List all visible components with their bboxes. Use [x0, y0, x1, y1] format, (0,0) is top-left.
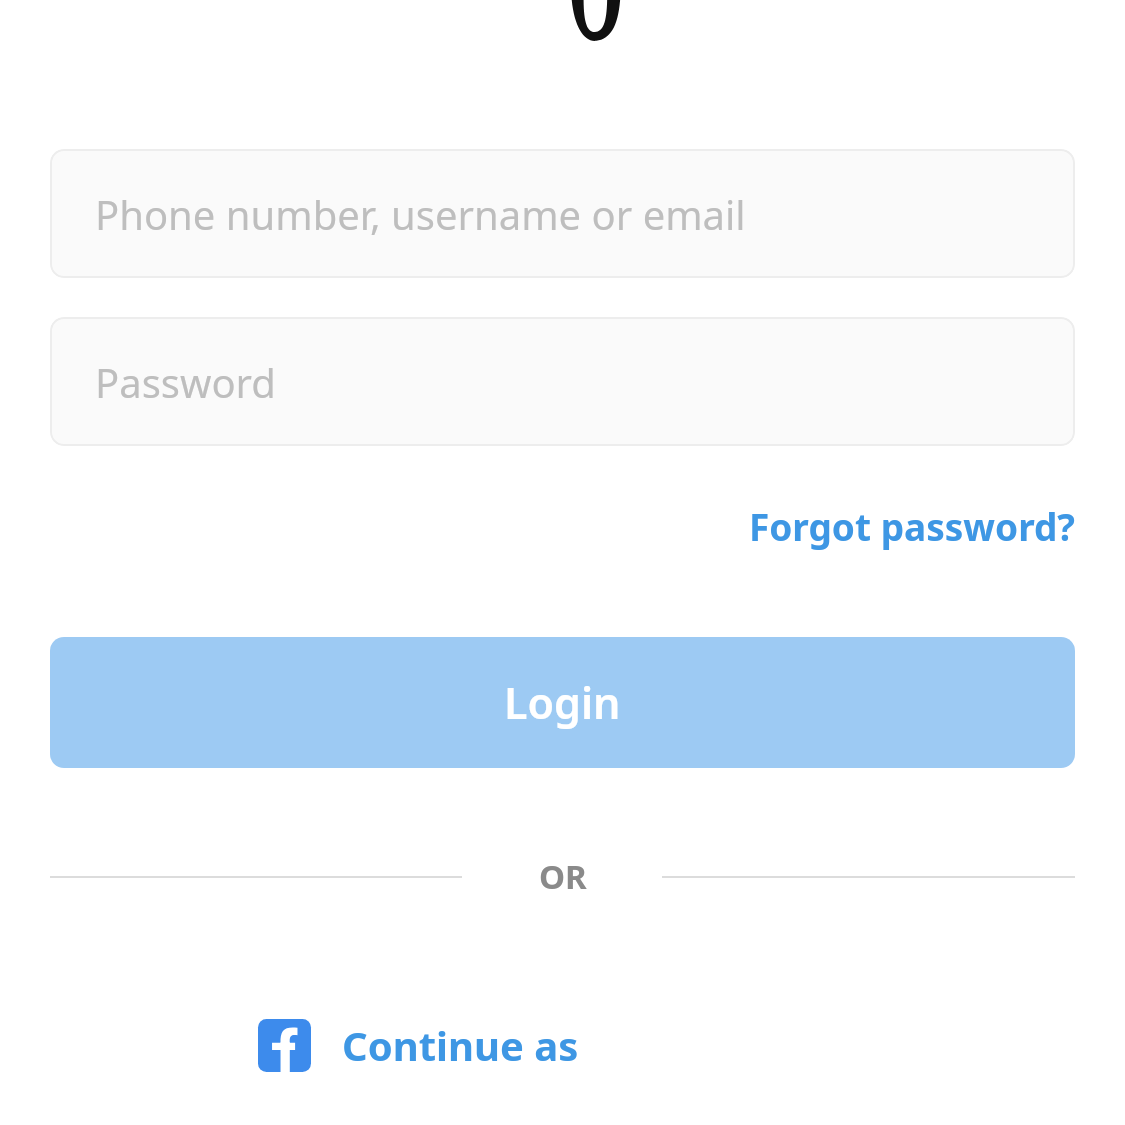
staticText: Phone number, username or email [95, 187, 746, 241]
staticText: Continue as [342, 1018, 579, 1072]
staticText: OR [539, 854, 587, 899]
button[interactable]: Login [50, 637, 1075, 768]
button[interactable]: Phone number, username or email [50, 149, 1075, 278]
other: Facebook [258, 1019, 311, 1072]
staticText: Forgot password? [748, 501, 1075, 551]
staticText: Password [95, 355, 276, 409]
staticText: Login [504, 673, 621, 732]
button[interactable]: Facebook [258, 1010, 598, 1080]
button[interactable]: Password [50, 317, 1075, 446]
button[interactable]: Forgot password? [700, 497, 1075, 555]
